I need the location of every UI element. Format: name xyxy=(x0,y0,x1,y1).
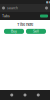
button[interactable]: Account xyxy=(45,6,48,9)
button[interactable]: Sell xyxy=(26,29,46,34)
staticText: ▮▮ ▮ xyxy=(46,0,50,3)
staticText: Sell xyxy=(33,29,39,33)
staticText: Tabs xyxy=(2,14,10,18)
staticText: Buy xyxy=(11,29,17,33)
button[interactable]: Buy xyxy=(4,29,24,34)
button[interactable]: Menu xyxy=(2,6,5,9)
staticText: search xyxy=(7,6,18,10)
staticText: Title here xyxy=(17,22,33,27)
